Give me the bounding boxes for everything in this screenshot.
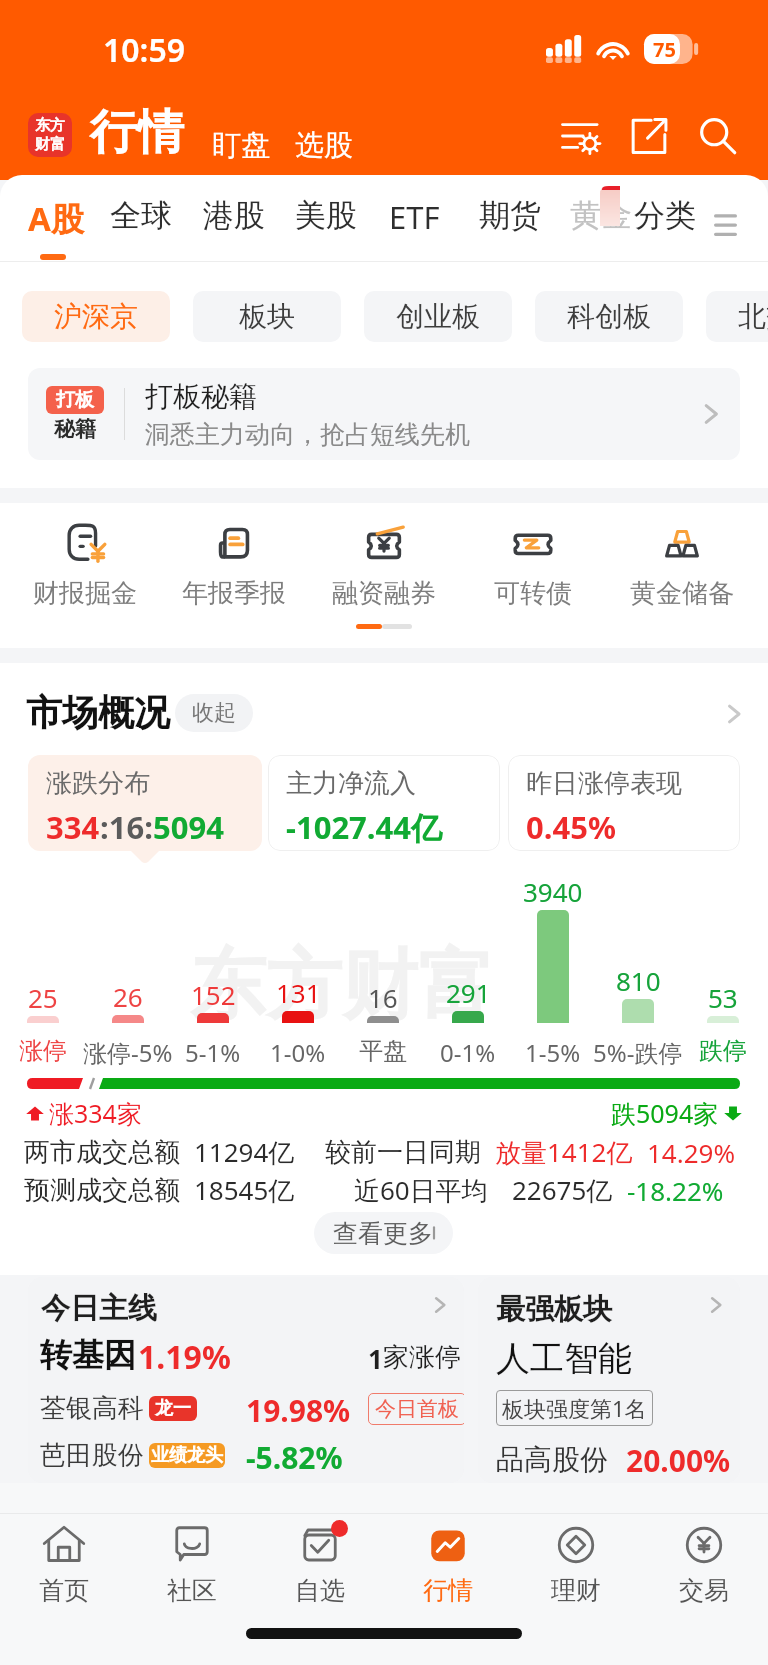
- staticText: 75: [653, 36, 676, 63]
- staticText: 1-5%: [525, 1036, 581, 1069]
- staticText: 0.45%: [526, 806, 616, 848]
- button[interactable]: 黄金储备: [622, 519, 742, 610]
- button[interactable]: 美股: [295, 196, 357, 260]
- staticText: 美股: [295, 196, 357, 235]
- staticText: 自选: [295, 1575, 345, 1606]
- button[interactable]: 社区: [128, 1520, 256, 1608]
- staticText: 行情: [423, 1575, 473, 1606]
- button[interactable]: 创业板: [364, 291, 512, 342]
- staticText: 可转债: [494, 577, 572, 610]
- staticText: 3940: [523, 874, 583, 909]
- staticText: 16: [368, 980, 398, 1015]
- staticText: 26: [113, 979, 143, 1014]
- button[interactable]: 昨日涨停表现: [508, 755, 740, 851]
- staticText: 创业板: [396, 299, 480, 334]
- button[interactable]: Search: [694, 112, 742, 160]
- button[interactable]: 可转债: [473, 519, 593, 610]
- button[interactable]: 盯盘: [212, 127, 270, 164]
- staticText: 交易: [679, 1575, 729, 1606]
- staticText: 131: [276, 975, 321, 1010]
- staticText: 洞悉主力动向，抢占短线先机: [145, 419, 470, 450]
- staticText: 转基因: [40, 1335, 136, 1375]
- staticText: 首页: [39, 1575, 89, 1606]
- staticText: 沪深京: [54, 299, 138, 334]
- button[interactable]: 北交所: [706, 291, 768, 342]
- staticText: 1.19%: [138, 1335, 231, 1379]
- button[interactable]: 打板: [28, 368, 740, 460]
- button[interactable]: 财报掘金: [25, 519, 145, 610]
- staticText: 财富: [35, 135, 65, 154]
- staticText: 放量1412亿: [495, 1134, 633, 1170]
- staticText: ETF: [389, 196, 440, 238]
- staticText: 5%-跌停: [593, 1036, 683, 1069]
- staticText: 18545亿: [194, 1172, 295, 1208]
- staticText: 财报掘金: [33, 577, 137, 610]
- staticText: 22675亿: [512, 1172, 613, 1208]
- button[interactable]: East Money logo: [28, 113, 72, 157]
- button[interactable]: 行情: [90, 103, 184, 162]
- button[interactable]: A股: [28, 196, 84, 260]
- button[interactable]: 行情: [384, 1520, 512, 1608]
- button[interactable]: 沪深京: [22, 291, 170, 342]
- staticText: 东方财富: [190, 938, 494, 1034]
- button[interactable]: Share: [625, 112, 673, 160]
- button[interactable]: 自选: [256, 1520, 384, 1608]
- staticText: 今日主线: [41, 1290, 157, 1327]
- button[interactable]: 查看更多: [314, 1212, 453, 1254]
- staticText: 涨跌分布: [46, 767, 150, 800]
- button[interactable]: ETF: [389, 196, 440, 260]
- staticText: 今日首板: [375, 1396, 459, 1422]
- staticText: 较前一日同期: [325, 1136, 481, 1169]
- button[interactable]: 港股: [203, 196, 265, 260]
- button[interactable]: Market overview detail: [716, 696, 752, 732]
- button[interactable]: 涨跌分布: [28, 755, 262, 851]
- staticText: 主力净流入: [286, 767, 416, 800]
- button[interactable]: 年报季报: [174, 519, 294, 610]
- button[interactable]: 最强板块: [478, 1277, 740, 1483]
- button[interactable]: 首页: [0, 1520, 128, 1608]
- staticText: 5094: [153, 806, 224, 848]
- staticText: 平盘: [359, 1036, 407, 1066]
- button[interactable]: 分类: [634, 196, 696, 235]
- button[interactable]: 科创板: [535, 291, 683, 342]
- staticText: 预测成交总额: [24, 1174, 180, 1207]
- staticText: 板块强度第1名: [502, 1393, 647, 1423]
- staticText: 20.00%: [626, 1440, 731, 1481]
- staticText: 近60日平均: [354, 1172, 488, 1208]
- staticText: 334: [46, 806, 100, 848]
- staticText: 芭田股份: [40, 1439, 144, 1472]
- staticText: 53: [708, 980, 738, 1015]
- button[interactable]: 全球: [110, 196, 172, 260]
- button[interactable]: 市场概况: [26, 690, 170, 735]
- button[interactable]: 理财: [512, 1520, 640, 1608]
- button[interactable]: 期货: [479, 196, 541, 260]
- staticText: 人工智能: [496, 1337, 632, 1380]
- staticText: 业绩龙头: [151, 1444, 223, 1467]
- staticText: 家涨停: [383, 1341, 461, 1374]
- button[interactable]: More tabs: [700, 196, 750, 250]
- button[interactable]: 今日主线: [28, 1277, 464, 1483]
- button[interactable]: 交易: [640, 1520, 768, 1608]
- button[interactable]: 板块: [193, 291, 341, 342]
- staticText: 港股: [203, 196, 265, 235]
- staticText: 龙一: [155, 1397, 191, 1420]
- button[interactable]: 主力净流入: [268, 755, 500, 851]
- button[interactable]: List settings: [556, 112, 604, 160]
- staticText: 25: [28, 980, 58, 1015]
- button[interactable]: 融资融券: [324, 519, 444, 610]
- staticText: 最强板块: [496, 1291, 612, 1328]
- staticText: -1027.44亿: [286, 806, 443, 848]
- button[interactable]: 黄金: [570, 196, 632, 235]
- staticText: 1-0%: [270, 1036, 326, 1069]
- staticText: 10:59: [103, 28, 186, 72]
- staticText: 品高股份: [496, 1442, 608, 1477]
- staticText: -5.82%: [246, 1437, 343, 1478]
- button[interactable]: 收起: [175, 694, 253, 732]
- staticText: 14.29%: [647, 1135, 736, 1170]
- button[interactable]: 选股: [295, 127, 353, 164]
- staticText: 两市成交总额: [24, 1136, 180, 1169]
- staticText: -18.22%: [627, 1173, 724, 1208]
- staticText: 291: [446, 975, 491, 1010]
- staticText: 荃银高科: [40, 1392, 144, 1425]
- staticText: 打板: [56, 388, 94, 412]
